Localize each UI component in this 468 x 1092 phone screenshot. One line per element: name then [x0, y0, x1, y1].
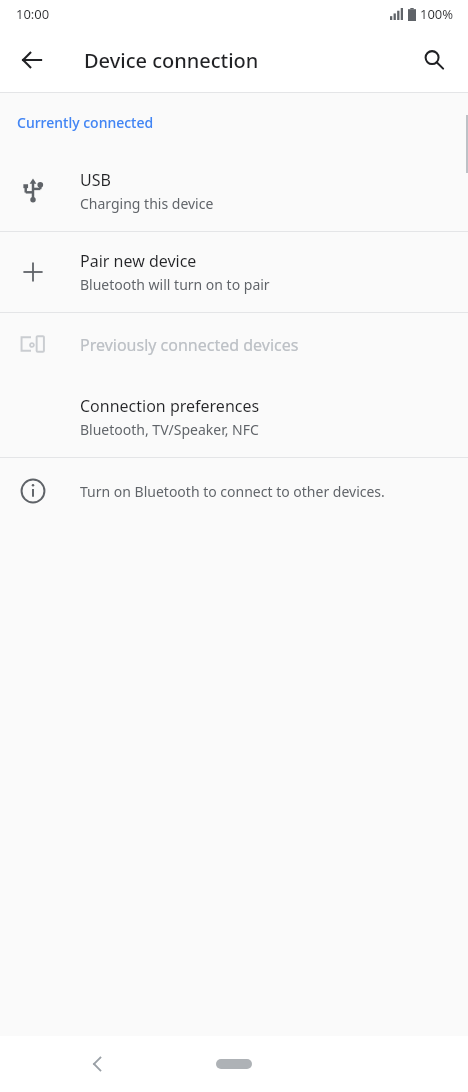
- staticText: Charging this device: [80, 194, 214, 213]
- button[interactable]: USB: [0, 151, 468, 231]
- staticText: Bluetooth, TV/Speaker, NFC: [80, 420, 259, 439]
- staticText: Connection preferences: [80, 395, 260, 417]
- staticText: 100%: [420, 5, 454, 23]
- staticText: Pair new device: [80, 250, 197, 272]
- button[interactable]: Home: [216, 1059, 252, 1069]
- staticText: Bluetooth will turn on to pair: [80, 275, 270, 294]
- button[interactable]: Previously connected devices: [0, 313, 468, 377]
- staticText: Previously connected devices: [80, 334, 299, 356]
- staticText: USB: [80, 169, 111, 191]
- staticText: Turn on Bluetooth to connect to other de…: [80, 482, 385, 501]
- button[interactable]: Search: [410, 36, 458, 84]
- button[interactable]: Back: [76, 1042, 120, 1086]
- staticText: Device connection: [84, 47, 259, 74]
- button[interactable]: Connection preferences: [0, 377, 468, 457]
- button[interactable]: Back: [8, 36, 56, 84]
- staticText: Currently connected: [17, 113, 154, 132]
- staticText: 10:00: [16, 5, 50, 23]
- button[interactable]: Pair new device: [0, 232, 468, 312]
